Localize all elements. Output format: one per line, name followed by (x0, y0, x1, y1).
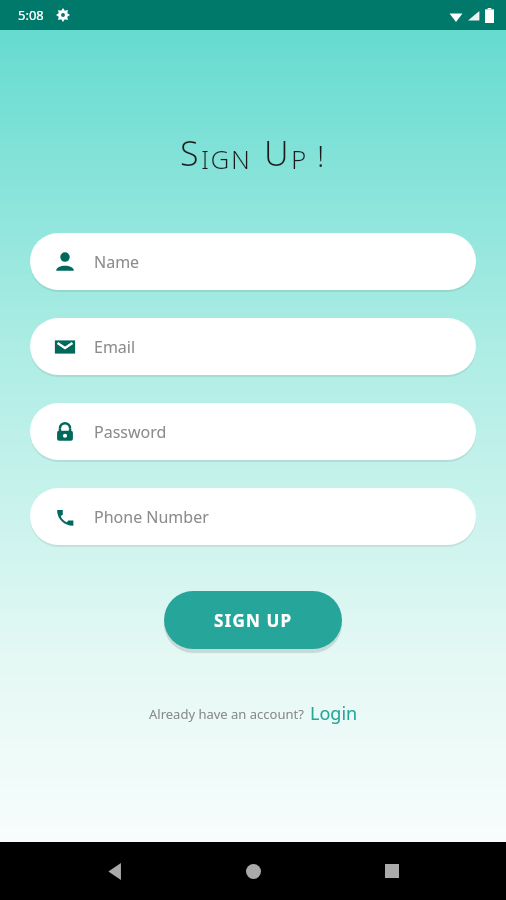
staticText: ! (317, 135, 326, 176)
staticText: Phone Number (94, 506, 209, 528)
staticText: Name (94, 251, 140, 273)
button[interactable]: SIGN UP (164, 591, 342, 649)
staticText: Password (94, 421, 167, 443)
button[interactable]: Name (30, 233, 476, 290)
button[interactable]: Phone Number (30, 488, 476, 545)
staticText: Already have an account? (149, 705, 304, 723)
button[interactable]: Home (229, 847, 277, 895)
button[interactable]: Recent apps (368, 847, 416, 895)
staticText: Login (310, 701, 358, 726)
staticText: SIGN UP (214, 609, 293, 632)
button[interactable]: Login (310, 701, 358, 726)
staticText: U (264, 130, 291, 176)
staticText: IGN (201, 141, 252, 176)
staticText: 5:08 (18, 6, 44, 24)
button[interactable]: Email (30, 318, 476, 375)
button[interactable]: Back (91, 847, 139, 895)
staticText: Email (94, 336, 136, 358)
button[interactable]: Password (30, 403, 476, 460)
staticText: P (291, 141, 308, 176)
staticText: S (180, 130, 201, 176)
